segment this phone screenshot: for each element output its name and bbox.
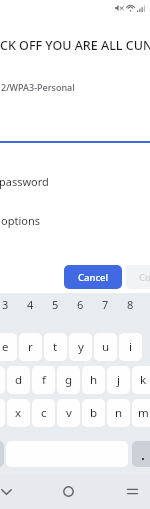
staticText: t xyxy=(53,339,58,355)
button[interactable]: v xyxy=(57,399,80,427)
button[interactable]: t xyxy=(44,333,67,361)
staticText: j xyxy=(117,372,120,388)
staticText: n xyxy=(115,405,123,421)
button[interactable]: r xyxy=(19,333,42,361)
button[interactable]: Cancel xyxy=(64,265,122,289)
staticText: r xyxy=(28,339,33,355)
button[interactable]: j xyxy=(107,366,130,394)
button[interactable]: Hide keyboard xyxy=(0,474,43,509)
staticText: CK OFF YOU ARE ALL CUNTS xyxy=(0,37,150,54)
staticText: f xyxy=(42,372,46,388)
button[interactable]: 7 xyxy=(94,293,117,315)
staticText: 7 xyxy=(102,297,109,312)
button[interactable]: Home xyxy=(43,474,93,509)
button[interactable]: g xyxy=(57,366,80,394)
staticText: 8 xyxy=(127,297,134,312)
staticText: d xyxy=(15,372,23,388)
staticText: h xyxy=(90,372,98,388)
button[interactable]: i xyxy=(119,333,142,361)
button[interactable]: e xyxy=(0,333,17,361)
staticText: 4 xyxy=(27,297,34,312)
button[interactable]: Key xyxy=(0,366,5,394)
button[interactable]: x xyxy=(7,399,30,427)
staticText: Cancel xyxy=(78,271,109,284)
button[interactable]: Symbols xyxy=(0,441,4,467)
staticText: y xyxy=(78,339,84,355)
button[interactable]: d xyxy=(7,366,30,394)
button[interactable]: f xyxy=(32,366,55,394)
button[interactable]: k xyxy=(132,366,150,394)
staticText: Connect xyxy=(139,271,150,284)
button[interactable]: n xyxy=(107,399,130,427)
button[interactable]: Key xyxy=(0,399,5,427)
staticText: u xyxy=(102,339,110,355)
button[interactable]: 6 xyxy=(69,293,92,315)
staticText: 2/WPA3-Personal xyxy=(1,81,75,93)
staticText: 3 xyxy=(2,297,9,312)
staticText: m xyxy=(138,405,149,421)
staticText: 5 xyxy=(52,297,59,312)
staticText: i xyxy=(129,339,132,355)
button[interactable]: c xyxy=(32,399,55,427)
staticText: x xyxy=(15,405,22,421)
button[interactable]: 5 xyxy=(44,293,67,315)
button[interactable]: h xyxy=(82,366,105,394)
button[interactable]: 3 xyxy=(0,293,17,315)
button[interactable]: u xyxy=(94,333,117,361)
staticText: password xyxy=(0,174,49,189)
button[interactable]: Connect xyxy=(126,265,150,289)
button[interactable]: b xyxy=(82,399,105,427)
other: Muted xyxy=(115,4,124,12)
button[interactable]: Recent apps xyxy=(107,474,150,509)
other: Wi-Fi xyxy=(126,4,135,12)
staticText: g xyxy=(65,372,73,388)
staticText: b xyxy=(90,405,98,421)
staticText: c xyxy=(41,405,47,421)
staticText: v xyxy=(66,405,72,421)
other: Signal strength xyxy=(137,4,145,12)
button[interactable]: 8 xyxy=(119,293,142,315)
staticText: k xyxy=(140,372,147,388)
staticText: e xyxy=(2,339,9,355)
button[interactable]: Period xyxy=(132,441,150,467)
button[interactable]: m xyxy=(132,399,150,427)
button[interactable]: 4 xyxy=(19,293,42,315)
staticText: options xyxy=(1,213,40,228)
button[interactable]: y xyxy=(69,333,92,361)
staticText: 6 xyxy=(77,297,84,312)
